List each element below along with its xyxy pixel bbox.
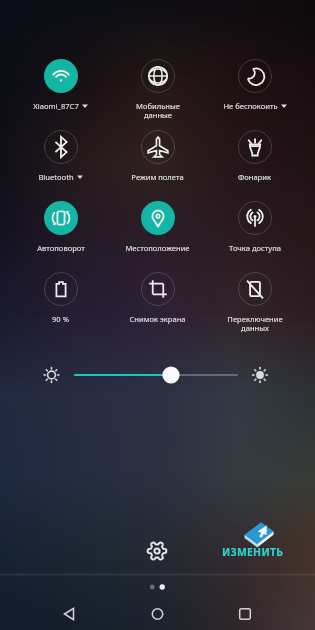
- button[interactable]: Местоположение: [109, 201, 206, 253]
- button[interactable]: Xiaomi_87C7: [12, 59, 109, 111]
- staticText: ИЗМЕНИТЬ: [222, 545, 284, 559]
- button[interactable]: Переключение данных: [206, 272, 303, 334]
- staticText: Снимок экрана: [129, 314, 186, 324]
- button[interactable]: Автоповорот: [12, 201, 109, 253]
- button[interactable]: Изменить: [215, 514, 295, 560]
- staticText: Местоположение: [125, 243, 190, 253]
- staticText: Мобильные данные: [136, 101, 180, 121]
- button[interactable]: Настройки: [141, 535, 173, 567]
- staticText: 90 %: [52, 314, 69, 324]
- button[interactable]: 90 %: [12, 272, 109, 324]
- button[interactable]: Bluetooth: [12, 130, 109, 182]
- button[interactable]: Назад: [54, 599, 84, 629]
- button[interactable]: Точка доступа: [206, 201, 303, 253]
- button[interactable]: Режим полета: [109, 130, 206, 182]
- staticText: Автоповорот: [37, 243, 85, 253]
- staticText: Не беспокоить: [223, 101, 278, 111]
- button[interactable]: Фонарик: [206, 130, 303, 182]
- button[interactable]: Главный экран: [143, 599, 173, 629]
- staticText: Переключение данных: [227, 314, 283, 334]
- staticText: Bluetooth: [38, 172, 74, 182]
- staticText: Точка доступа: [229, 243, 281, 253]
- button[interactable]: Недавние приложения: [230, 599, 260, 629]
- staticText: Фонарик: [238, 172, 271, 182]
- button[interactable]: Снимок экрана: [109, 272, 206, 324]
- staticText: Режим полета: [131, 172, 184, 182]
- button[interactable]: Мобильные данные: [109, 59, 206, 121]
- staticText: Xiaomi_87C7: [33, 101, 79, 111]
- button[interactable]: Не беспокоить: [206, 59, 303, 111]
